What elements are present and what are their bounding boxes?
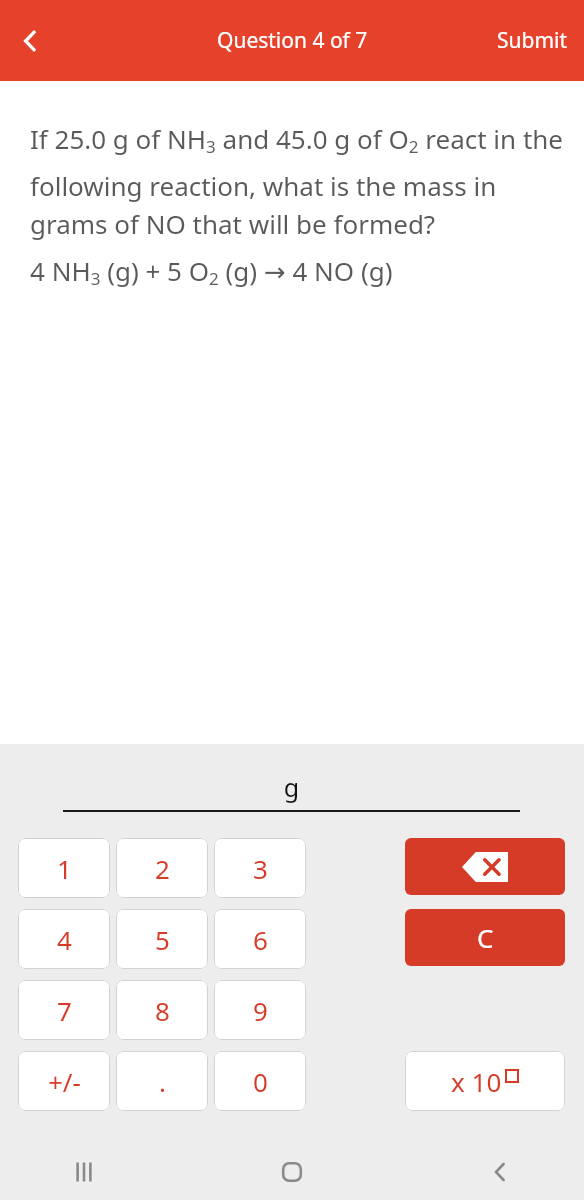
button[interactable]: 1 — [18, 838, 110, 898]
button[interactable]: 3 — [214, 838, 306, 898]
staticText: 7 — [57, 993, 72, 1028]
button[interactable]: Submit — [481, 16, 584, 65]
staticText: 4 NH3 (g) + 5 O2 (g) → 4 NO (g) — [30, 253, 393, 290]
staticText: If 25.0 g of NH3 and 45.0 g of O2 react … — [30, 121, 570, 241]
staticText: 1 — [57, 851, 72, 886]
button[interactable]: 7 — [18, 980, 110, 1040]
staticText: 2 — [155, 851, 170, 886]
staticText: Question 4 of 7 — [217, 26, 368, 55]
button[interactable]: Recents — [60, 1148, 108, 1196]
staticText: 9 — [253, 993, 268, 1028]
button[interactable]: 8 — [116, 980, 208, 1040]
button[interactable]: 9 — [214, 980, 306, 1040]
button[interactable]: 5 — [116, 909, 208, 969]
button[interactable]: C — [405, 909, 565, 966]
staticText: 6 — [253, 922, 268, 957]
button[interactable]: 0 — [214, 1051, 306, 1111]
staticText: 3 — [253, 851, 268, 886]
staticText: 4 — [57, 922, 72, 957]
button[interactable]: Home — [268, 1148, 316, 1196]
staticText: g — [63, 770, 520, 804]
button[interactable]: 6 — [214, 909, 306, 969]
button[interactable]: 2 — [116, 838, 208, 898]
staticText: C — [477, 920, 494, 955]
staticText: . — [159, 1064, 166, 1099]
staticText: +/- — [48, 1064, 81, 1099]
button[interactable]: Back — [4, 15, 56, 67]
button[interactable]: x 10 — [405, 1051, 565, 1111]
button[interactable]: . — [116, 1051, 208, 1111]
button[interactable]: 4 — [18, 909, 110, 969]
staticText: Submit — [497, 26, 568, 55]
staticText: x 10 — [451, 1064, 502, 1099]
button[interactable]: Backspace — [405, 838, 565, 895]
staticText: 8 — [155, 993, 170, 1028]
button[interactable]: Back — [476, 1148, 524, 1196]
staticText: 5 — [155, 922, 170, 957]
staticText: 0 — [253, 1064, 268, 1099]
button[interactable]: +/- — [18, 1051, 110, 1111]
